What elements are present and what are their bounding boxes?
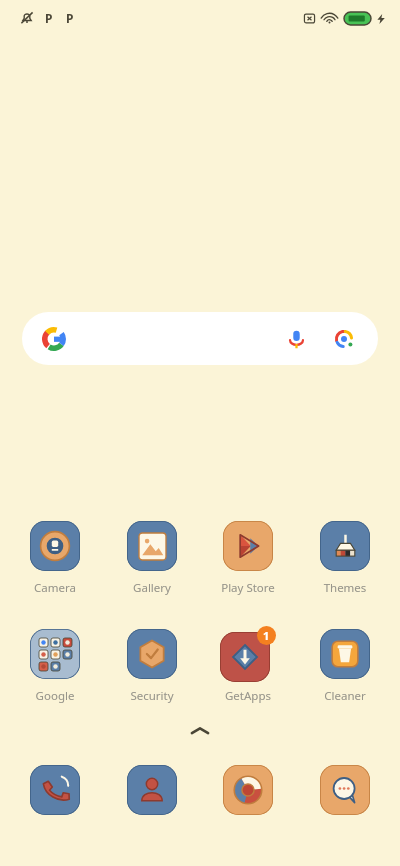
- button[interactable]: Google Lens: [330, 325, 358, 353]
- button[interactable]: Gallery: [110, 518, 194, 596]
- button[interactable]: Google: [13, 626, 97, 704]
- button[interactable]: Voice search: [282, 325, 310, 353]
- staticText: Camera: [13, 580, 97, 596]
- staticText: P: [66, 10, 74, 26]
- staticText: Cleaner: [303, 688, 387, 704]
- button[interactable]: All apps: [183, 720, 217, 742]
- button[interactable]: Chrome: [206, 762, 290, 818]
- button[interactable]: Cleaner: [303, 626, 387, 704]
- button[interactable]: Messages: [303, 762, 387, 818]
- staticText: Play Store: [206, 580, 290, 596]
- staticText: Google: [13, 688, 97, 704]
- button[interactable]: Search: [22, 312, 378, 365]
- button[interactable]: Security: [110, 626, 194, 704]
- staticText: Themes: [303, 580, 387, 596]
- button[interactable]: 1: [206, 626, 290, 704]
- staticText: GetApps: [206, 688, 290, 704]
- button[interactable]: Themes: [303, 518, 387, 596]
- staticText: 1: [263, 628, 270, 643]
- staticText: P: [45, 10, 53, 26]
- button[interactable]: Contacts: [110, 762, 194, 818]
- button[interactable]: Camera: [13, 518, 97, 596]
- button[interactable]: Phone: [13, 762, 97, 818]
- button[interactable]: Play Store: [206, 518, 290, 596]
- staticText: Gallery: [110, 580, 194, 596]
- staticText: Security: [110, 688, 194, 704]
